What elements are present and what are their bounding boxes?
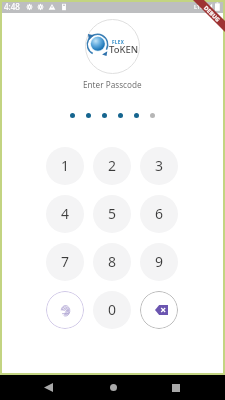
button[interactable]: 3	[140, 147, 178, 185]
staticText: 9	[155, 252, 164, 271]
staticText: 0	[108, 300, 117, 319]
staticText: 7	[61, 252, 70, 271]
button[interactable]: 0	[93, 291, 131, 329]
staticText: 5	[108, 204, 117, 223]
staticText: DEBUG	[202, 4, 222, 24]
button[interactable]: 8	[93, 243, 131, 281]
button[interactable]: Backspace	[140, 291, 178, 329]
button[interactable]: 2	[93, 147, 131, 185]
button[interactable]: 5	[93, 195, 131, 233]
button[interactable]: 6	[140, 195, 178, 233]
button[interactable]: Recent apps	[162, 375, 188, 400]
staticText: 6	[155, 204, 164, 223]
button[interactable]: 4	[46, 195, 84, 233]
staticText: 4:48	[4, 1, 20, 12]
button[interactable]: Back	[37, 375, 63, 400]
staticText: 4	[61, 204, 70, 223]
staticText: FLEX	[112, 39, 125, 45]
staticText: 2	[108, 156, 117, 175]
button[interactable]: 9	[140, 243, 178, 281]
button[interactable]: Home	[100, 375, 126, 400]
staticText: ToKEN	[109, 43, 139, 56]
staticText: 8	[108, 252, 117, 271]
staticText: 3	[155, 156, 164, 175]
staticText: LTE	[194, 3, 204, 11]
button[interactable]: 1	[46, 147, 84, 185]
staticText: Enter Passcode	[83, 79, 142, 90]
staticText: 1	[61, 156, 70, 175]
button[interactable]: 7	[46, 243, 84, 281]
button[interactable]: Fingerprint unlock	[46, 291, 84, 329]
